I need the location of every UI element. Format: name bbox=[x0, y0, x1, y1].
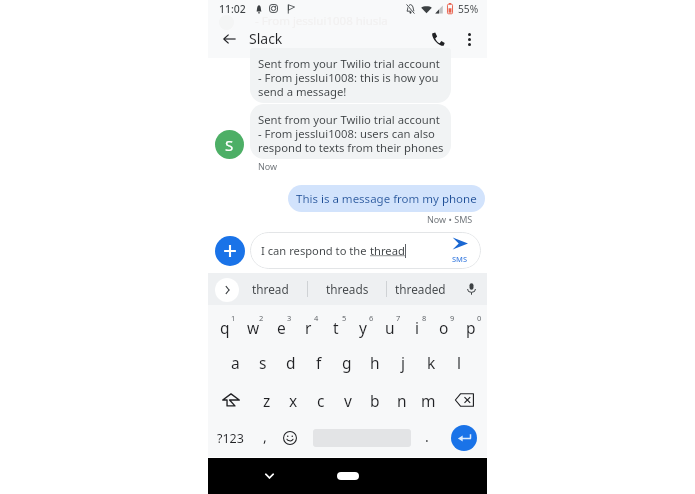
staticText: 8 bbox=[422, 313, 427, 323]
staticText: f bbox=[316, 352, 322, 373]
button[interactable]: u bbox=[376, 305, 403, 343]
button[interactable]: a bbox=[222, 343, 249, 381]
button[interactable]: , bbox=[253, 419, 276, 457]
staticText: 55% bbox=[458, 2, 479, 16]
staticText: e bbox=[277, 317, 286, 338]
staticText: g bbox=[342, 352, 352, 373]
button[interactable]: Backspace bbox=[442, 381, 487, 419]
button[interactable]: Shift bbox=[208, 381, 253, 419]
button[interactable]: Add attachment bbox=[215, 236, 245, 266]
staticText: j bbox=[401, 352, 405, 373]
staticText: n bbox=[397, 390, 407, 411]
staticText: Now • SMS bbox=[427, 213, 473, 225]
button[interactable]: Enter bbox=[451, 425, 477, 451]
button[interactable]: w bbox=[239, 305, 267, 343]
staticText: , bbox=[263, 427, 267, 446]
staticText: 0 bbox=[477, 313, 482, 323]
staticText: i bbox=[415, 317, 419, 338]
button[interactable]: f bbox=[305, 343, 333, 381]
button[interactable]: e bbox=[267, 305, 295, 343]
button[interactable]: b bbox=[361, 381, 388, 419]
staticText: I can respond to the bbox=[261, 243, 370, 258]
button[interactable]: Space bbox=[304, 419, 414, 457]
staticText: z bbox=[263, 390, 271, 411]
staticText: v bbox=[344, 390, 352, 411]
staticText: p bbox=[466, 317, 476, 338]
button[interactable]: Call bbox=[423, 24, 453, 54]
button[interactable]: thread bbox=[241, 273, 299, 305]
button[interactable]: m bbox=[415, 381, 442, 419]
button[interactable]: threads bbox=[309, 273, 386, 305]
staticText: . bbox=[425, 427, 429, 446]
staticText: h bbox=[370, 352, 380, 373]
staticText: 7 bbox=[396, 313, 401, 323]
staticText: S bbox=[225, 135, 234, 155]
staticText: SMS bbox=[452, 254, 468, 264]
staticText: o bbox=[439, 317, 449, 338]
staticText: u bbox=[385, 317, 395, 338]
staticText: k bbox=[427, 352, 436, 373]
button[interactable]: Emoji bbox=[276, 419, 304, 457]
button[interactable]: More options bbox=[454, 24, 484, 54]
button[interactable]: ?123 bbox=[208, 419, 253, 457]
button[interactable]: q bbox=[211, 305, 239, 343]
button[interactable]: z bbox=[253, 381, 280, 419]
button[interactable]: g bbox=[333, 343, 361, 381]
staticText: c bbox=[317, 390, 325, 411]
button[interactable]: Home bbox=[318, 466, 378, 486]
staticText: 3 bbox=[287, 313, 292, 323]
button[interactable]: This is a message from my phone bbox=[288, 185, 485, 212]
staticText: Sent from your Twilio trial account - Fr… bbox=[258, 56, 440, 99]
button[interactable]: o bbox=[430, 305, 457, 343]
button[interactable]: y bbox=[349, 305, 376, 343]
button[interactable]: Voice input bbox=[459, 273, 484, 305]
staticText: t bbox=[333, 317, 339, 338]
staticText: threaded bbox=[395, 281, 446, 297]
button[interactable]: Sent from your Twilio trial account - Fr… bbox=[250, 104, 451, 159]
staticText: s bbox=[259, 352, 267, 373]
staticText: 2 bbox=[259, 313, 264, 323]
button[interactable]: I can respond to the bbox=[250, 232, 481, 269]
button[interactable]: n bbox=[388, 381, 415, 419]
button[interactable]: Hide keyboard bbox=[257, 464, 281, 488]
button[interactable]: d bbox=[277, 343, 305, 381]
staticText: 6 bbox=[369, 313, 374, 323]
staticText: b bbox=[370, 390, 380, 411]
button[interactable]: j bbox=[389, 343, 417, 381]
staticText: 1 bbox=[231, 313, 236, 323]
staticText: y bbox=[359, 317, 367, 338]
staticText: - From jesslui1008 hiusla bbox=[255, 13, 388, 29]
staticText: 5 bbox=[342, 313, 347, 323]
staticText: q bbox=[220, 317, 230, 338]
button[interactable]: Sent from your Twilio trial account - Fr… bbox=[250, 48, 451, 103]
button[interactable]: Back bbox=[214, 24, 244, 54]
staticText: This is a message from my phone bbox=[296, 191, 477, 207]
staticText: thread bbox=[370, 243, 405, 258]
button[interactable]: k bbox=[417, 343, 445, 381]
staticText: 9 bbox=[450, 313, 455, 323]
staticText: m bbox=[421, 390, 436, 411]
button[interactable]: r bbox=[295, 305, 322, 343]
staticText: threads bbox=[326, 281, 369, 297]
button[interactable]: Expand toolbar bbox=[215, 278, 239, 302]
staticText: w bbox=[247, 317, 260, 338]
button[interactable]: . bbox=[414, 419, 440, 457]
button[interactable]: x bbox=[280, 381, 307, 419]
button[interactable]: l bbox=[445, 343, 473, 381]
button[interactable]: threaded bbox=[384, 273, 457, 305]
staticText: ?123 bbox=[217, 430, 244, 447]
button[interactable]: h bbox=[361, 343, 389, 381]
staticText: thread bbox=[252, 281, 289, 297]
button[interactable]: s bbox=[249, 343, 277, 381]
staticText: 11:02 bbox=[219, 2, 246, 16]
staticText: d bbox=[286, 352, 296, 373]
button[interactable]: v bbox=[334, 381, 361, 419]
button[interactable]: t bbox=[322, 305, 349, 343]
button[interactable]: p bbox=[457, 305, 484, 343]
staticText: r bbox=[305, 317, 312, 338]
button[interactable]: i bbox=[403, 305, 430, 343]
staticText: Slack bbox=[249, 29, 283, 48]
staticText: x bbox=[289, 390, 298, 411]
staticText: l bbox=[457, 352, 461, 373]
button[interactable]: c bbox=[307, 381, 334, 419]
